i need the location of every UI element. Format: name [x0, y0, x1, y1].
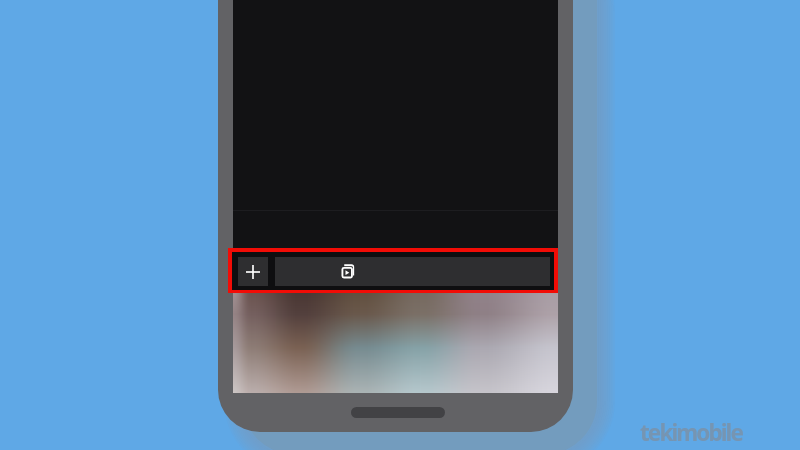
button[interactable]: New tab	[238, 257, 268, 286]
button[interactable]: Tabs	[275, 257, 550, 286]
staticText: tekimobile	[640, 417, 742, 448]
